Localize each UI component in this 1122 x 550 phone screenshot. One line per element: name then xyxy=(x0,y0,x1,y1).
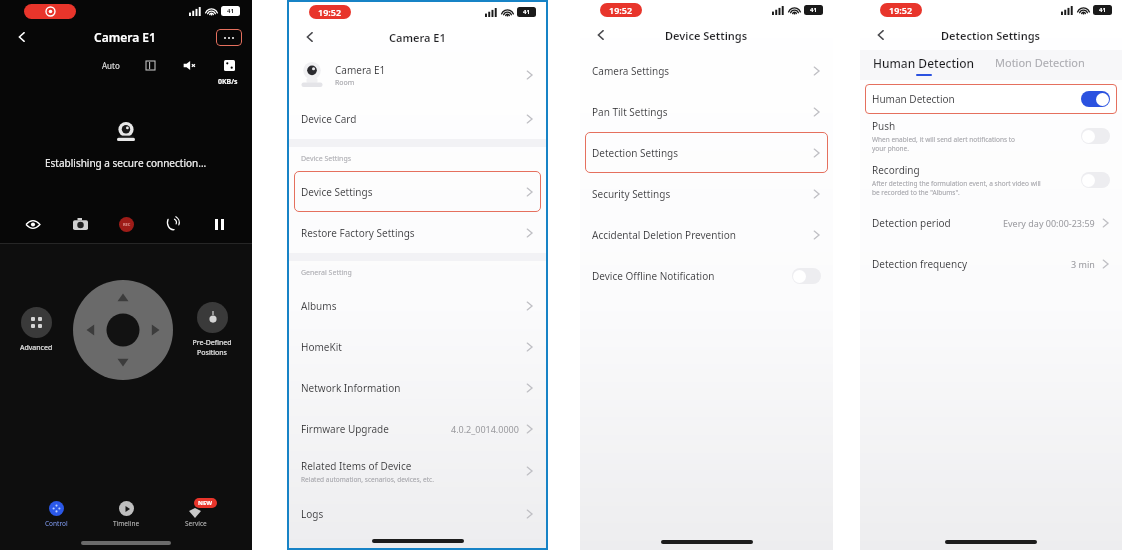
staticText: Human Detection xyxy=(873,55,975,71)
button[interactable]: Push xyxy=(872,114,1110,158)
staticText: Positions xyxy=(197,348,227,358)
button[interactable]: Recording xyxy=(872,158,1110,202)
staticText: Camera E1 xyxy=(335,63,386,77)
staticText: Push xyxy=(872,119,896,133)
button[interactable]: Pan tilt control xyxy=(73,280,173,380)
staticText: Recording xyxy=(872,163,920,177)
button[interactable]: HomeKit xyxy=(301,326,534,367)
button[interactable] xyxy=(1081,172,1110,188)
button[interactable]: Network Information xyxy=(301,367,534,408)
button[interactable]: Accidental Deletion Prevention xyxy=(592,214,821,255)
staticText: Security Settings xyxy=(592,187,671,201)
staticText: General Setting xyxy=(301,268,352,278)
staticText: 0KB/s xyxy=(218,77,238,87)
staticText: Room xyxy=(335,78,355,88)
button[interactable]: Firmware Upgrade xyxy=(301,408,534,449)
staticText: Logs xyxy=(301,507,324,521)
button[interactable]: Timeline xyxy=(113,501,140,528)
staticText: Detection frequency xyxy=(872,257,968,271)
staticText: Camera E1 xyxy=(389,30,446,45)
button[interactable]: Advanced xyxy=(20,307,53,353)
staticText: Device Offline Notification xyxy=(592,269,715,283)
staticText: Albums xyxy=(301,299,337,313)
staticText: Restore Factory Settings xyxy=(301,226,415,240)
button[interactable]: Pause xyxy=(206,211,232,237)
button[interactable]: Camera Settings xyxy=(592,50,821,91)
staticText: Pan Tilt Settings xyxy=(592,105,668,119)
button[interactable]: Human Detection xyxy=(873,55,975,76)
staticText: Pre-Defined xyxy=(192,338,232,348)
button[interactable]: Security Settings xyxy=(592,173,821,214)
staticText: 19:52 xyxy=(609,4,633,16)
staticText: Network Information xyxy=(301,381,401,395)
button[interactable]: Back xyxy=(299,26,321,48)
staticText: Related automation, scenarios, devices, … xyxy=(301,475,434,484)
button[interactable] xyxy=(1081,91,1110,107)
button[interactable]: Back xyxy=(870,24,892,46)
button[interactable]: Pan Tilt Settings xyxy=(592,91,821,132)
button[interactable]: Privacy xyxy=(20,211,46,237)
button[interactable]: Detection frequency xyxy=(872,243,1110,284)
staticText: REC xyxy=(123,222,131,227)
button[interactable]: Back xyxy=(590,24,612,46)
button[interactable]: Snapshot xyxy=(67,211,93,237)
staticText: 41 xyxy=(523,8,530,16)
button[interactable]: Restore Factory Settings xyxy=(301,212,534,253)
button[interactable]: Motion Detection xyxy=(995,55,1085,75)
staticText: Related Items of Device xyxy=(301,459,412,473)
staticText: Accidental Deletion Prevention xyxy=(592,228,736,242)
button[interactable]: Fullscreen xyxy=(220,56,238,74)
button[interactable]: NEW xyxy=(184,500,207,528)
staticText: Device Settings xyxy=(665,28,748,43)
button[interactable]: Camera E1 xyxy=(301,52,534,98)
button[interactable]: Device Settings xyxy=(301,171,534,212)
staticText: Auto xyxy=(102,60,120,71)
staticText: When enabled, it will send alert notific… xyxy=(872,135,1015,153)
staticText: 19:52 xyxy=(889,4,913,16)
button[interactable] xyxy=(1081,128,1110,144)
staticText: Timeline xyxy=(113,519,140,528)
staticText: Advanced xyxy=(20,343,53,353)
staticText: Device Settings xyxy=(301,154,352,164)
staticText: Establishing a secure connection... xyxy=(45,156,207,170)
button[interactable]: Back xyxy=(10,25,34,49)
button[interactable]: Detection Settings xyxy=(592,132,821,173)
staticText: NEW xyxy=(198,499,213,507)
staticText: Control xyxy=(45,519,68,528)
button[interactable]: Device Offline Notification xyxy=(592,255,821,296)
button[interactable]: Human Detection xyxy=(865,84,1117,114)
button[interactable]: Logs xyxy=(301,493,534,534)
button[interactable]: Mute xyxy=(180,56,198,74)
staticText: HomeKit xyxy=(301,340,342,354)
button[interactable] xyxy=(792,268,821,284)
staticText: Device Settings xyxy=(301,185,373,199)
staticText: After detecting the formulation event, a… xyxy=(872,179,1041,197)
button[interactable]: Talk xyxy=(159,211,185,237)
staticText: 4.0.2_0014.0000 xyxy=(451,423,519,435)
button[interactable]: Device Card xyxy=(301,98,534,139)
button[interactable]: Detection period xyxy=(872,202,1110,243)
staticText: Motion Detection xyxy=(995,55,1085,70)
staticText: Camera E1 xyxy=(94,29,156,45)
staticText: 41 xyxy=(1099,6,1106,14)
staticText: Firmware Upgrade xyxy=(301,422,389,436)
staticText: 3 min xyxy=(1071,258,1095,270)
staticText: Every day 00:00-23:59 xyxy=(1003,217,1095,229)
staticText: 19:52 xyxy=(318,6,342,18)
staticText: 41 xyxy=(227,7,234,15)
staticText: Device Card xyxy=(301,112,357,126)
staticText: Detection period xyxy=(872,216,951,230)
button[interactable]: Albums xyxy=(301,285,534,326)
staticText: 41 xyxy=(810,6,817,14)
button[interactable]: Control xyxy=(45,501,68,528)
button[interactable]: Related Items of Device xyxy=(301,449,534,493)
button[interactable]: Quality xyxy=(142,57,158,73)
staticText: Detection Settings xyxy=(941,28,1041,43)
button[interactable]: Pre-Defined xyxy=(192,302,232,358)
staticText: Service xyxy=(185,519,207,528)
staticText: Detection Settings xyxy=(592,146,679,160)
staticText: Human Detection xyxy=(872,92,955,106)
button[interactable]: More options xyxy=(216,29,242,46)
button[interactable]: Record xyxy=(113,211,139,237)
staticText: Camera Settings xyxy=(592,64,670,78)
